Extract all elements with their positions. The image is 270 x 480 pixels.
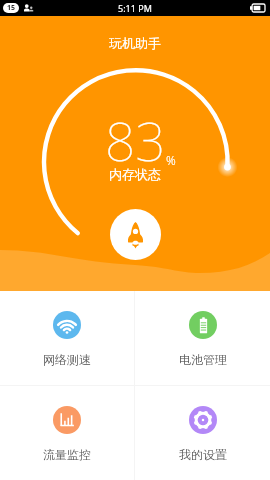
staticText: 5:11 PM [118, 2, 152, 14]
button[interactable]: 电池管理 [135, 291, 270, 385]
other: Battery [250, 4, 265, 12]
button[interactable]: 流量监控 [0, 386, 134, 480]
button[interactable]: 我的设置 [135, 386, 270, 480]
staticText: 玩机助手 [109, 35, 161, 51]
button[interactable]: 网络测速 [0, 291, 134, 385]
staticText: 流量监控 [43, 447, 91, 462]
button[interactable]: 一键加速 [110, 209, 161, 260]
staticText: 网络测速 [43, 352, 91, 367]
staticText: % [166, 152, 176, 168]
staticText: 内存状态 [109, 166, 161, 182]
staticText: 我的设置 [179, 447, 227, 462]
staticText: 83 [105, 104, 166, 176]
staticText: 电池管理 [179, 352, 227, 367]
staticText: 15 [7, 3, 16, 13]
